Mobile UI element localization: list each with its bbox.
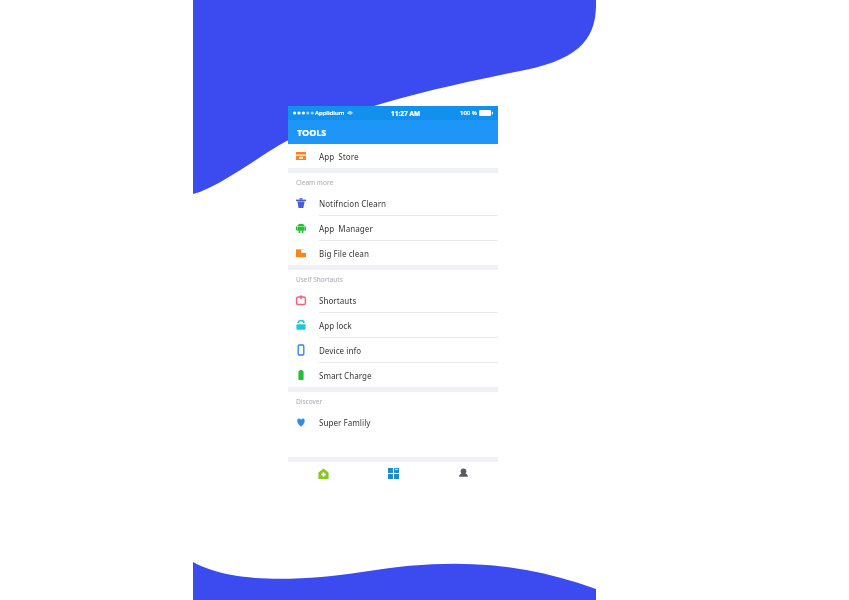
button[interactable]: Big File clean <box>288 241 498 265</box>
button[interactable]: Shortauts <box>288 288 498 312</box>
staticText: Applidium <box>315 109 345 117</box>
staticText: Shortauts <box>319 295 357 306</box>
button[interactable]: Smart Charge <box>288 363 498 387</box>
button[interactable]: Apps <box>358 462 428 484</box>
staticText: Super Famlily <box>319 417 371 428</box>
staticText: App Store <box>319 151 359 162</box>
button[interactable]: App Manager <box>288 216 498 240</box>
staticText: Device info <box>319 345 362 356</box>
button[interactable]: Device info <box>288 338 498 362</box>
staticText: Discover <box>296 397 323 406</box>
staticText: App Manager <box>319 223 373 234</box>
staticText: Big File clean <box>319 248 369 259</box>
staticText: TOOLS <box>297 126 327 138</box>
staticText: Cleam more <box>296 178 334 187</box>
staticText: 11:27 AM <box>391 109 421 118</box>
staticText: App lock <box>319 320 352 331</box>
staticText: Smart Charge <box>319 370 372 381</box>
button[interactable]: App Store <box>288 144 498 168</box>
staticText: Uself Shortauts <box>296 275 343 284</box>
staticText: Notifncion Clearn <box>319 198 387 209</box>
button[interactable]: Notifncion Clearn <box>288 191 498 215</box>
button[interactable]: Home <box>288 462 358 484</box>
button[interactable]: Profile <box>428 462 498 484</box>
button[interactable]: Super Famlily <box>288 410 498 434</box>
button[interactable]: App lock <box>288 313 498 337</box>
staticText: 100 % <box>460 109 477 117</box>
